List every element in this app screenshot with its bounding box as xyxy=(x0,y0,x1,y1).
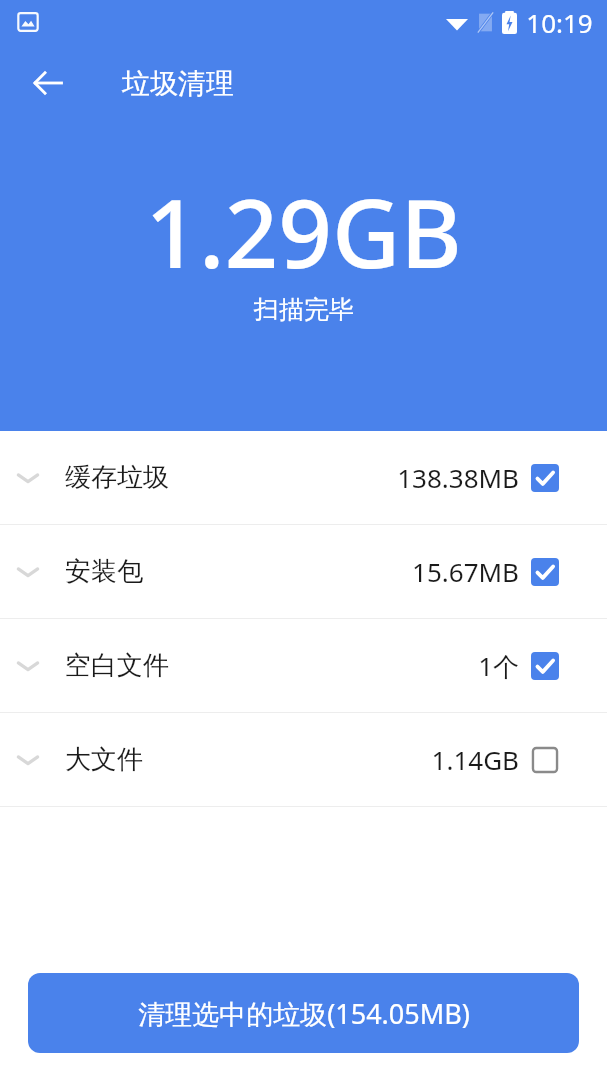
staticText: 1.14GB xyxy=(431,742,519,777)
staticText: 10:19 xyxy=(526,5,593,40)
staticText: 缓存垃圾 xyxy=(65,461,169,494)
button[interactable]: 大文件 xyxy=(0,713,607,806)
button[interactable]: Back xyxy=(14,49,82,117)
staticText: 大文件 xyxy=(65,743,143,776)
staticText: 清理选中的垃圾(154.05MB) xyxy=(138,995,470,1032)
button[interactable]: Selected xyxy=(531,558,559,586)
button[interactable]: Selected xyxy=(531,652,559,680)
staticText: 15.67MB xyxy=(412,554,519,589)
button[interactable]: 缓存垃圾 xyxy=(0,431,607,524)
button[interactable]: 清理选中的垃圾(154.05MB) xyxy=(28,973,579,1053)
button[interactable]: 空白文件 xyxy=(0,619,607,712)
button[interactable]: Not selected xyxy=(531,746,559,774)
staticText: 138.38MB xyxy=(397,460,519,495)
button[interactable]: Selected xyxy=(531,464,559,492)
button[interactable]: 安装包 xyxy=(0,525,607,618)
staticText: 扫描完毕 xyxy=(254,294,354,325)
staticText: 垃圾清理 xyxy=(122,66,234,101)
staticText: 1.29GB xyxy=(145,168,462,276)
staticText: 空白文件 xyxy=(65,649,169,682)
staticText: 1个 xyxy=(478,648,519,684)
staticText: 安装包 xyxy=(65,555,143,588)
